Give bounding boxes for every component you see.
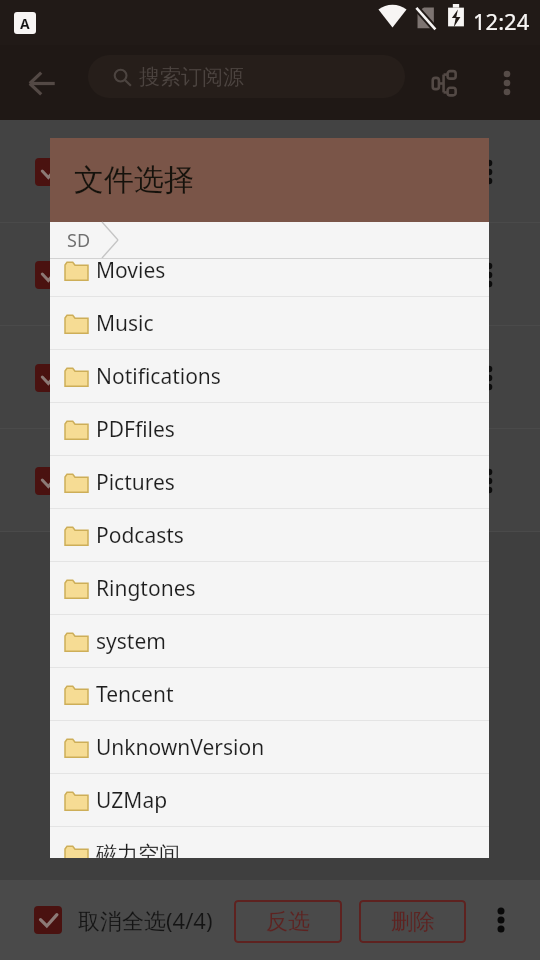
staticText: 12:24 (473, 6, 530, 36)
button[interactable]: Back (20, 61, 64, 105)
button[interactable]: Music (50, 297, 489, 350)
button[interactable]: Feed options (467, 253, 511, 297)
staticText: 文件选择 (74, 161, 194, 199)
button[interactable]: 搜索订阅源 (88, 55, 405, 98)
button[interactable]: UZMap (50, 774, 489, 827)
button[interactable]: Select feed (35, 261, 63, 289)
button[interactable]: Feed options (467, 459, 511, 503)
button[interactable]: Ringtones (50, 562, 489, 615)
button[interactable]: 删除 (359, 900, 466, 943)
staticText: Podcasts (96, 521, 184, 550)
staticText: PDFfiles (96, 415, 175, 444)
staticText: system (96, 627, 166, 656)
button[interactable]: Select feed (35, 467, 63, 495)
staticText: Notifications (96, 362, 221, 391)
staticText: SD (67, 228, 91, 253)
button[interactable]: Notifications (50, 350, 489, 403)
button[interactable]: Movies (50, 259, 489, 297)
button[interactable]: Feed options (467, 150, 511, 194)
button[interactable]: Tencent (50, 668, 489, 721)
button[interactable]: PDFfiles (50, 403, 489, 456)
staticText: UnknownVersion (96, 733, 265, 762)
button[interactable]: Feed options (467, 356, 511, 400)
button[interactable]: SD (63, 224, 95, 257)
staticText: UZMap (96, 786, 168, 815)
staticText: 反选 (266, 908, 310, 936)
button[interactable]: Select feed (35, 158, 63, 186)
staticText: Movies (96, 259, 166, 285)
staticText: 搜索订阅源 (139, 64, 244, 90)
button[interactable]: Pictures (50, 456, 489, 509)
staticText: Pictures (96, 468, 175, 497)
button[interactable]: UnknownVersion (50, 721, 489, 774)
button[interactable]: Toggle select all (34, 906, 62, 934)
button[interactable]: system (50, 615, 489, 668)
staticText: 磁力空间 (96, 841, 180, 858)
button[interactable]: Podcasts (50, 509, 489, 562)
staticText: Tencent (96, 680, 174, 709)
button[interactable]: Select feed (35, 364, 63, 392)
button[interactable]: More options (479, 898, 523, 942)
button[interactable]: Categories (422, 61, 466, 105)
button[interactable]: 磁力空间 (50, 827, 489, 858)
staticText: 取消全选(4/4) (78, 905, 213, 935)
staticText: Ringtones (96, 574, 196, 603)
button[interactable]: More options (485, 61, 529, 105)
button[interactable]: 反选 (234, 900, 342, 943)
staticText: Music (96, 309, 154, 338)
staticText: A (20, 14, 30, 33)
staticText: 删除 (391, 908, 435, 936)
